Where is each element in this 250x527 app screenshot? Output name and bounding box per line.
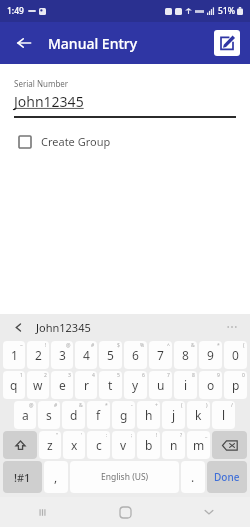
staticText: q (10, 377, 18, 393)
button[interactable]: Edit (214, 30, 240, 56)
button[interactable]: Create Group (14, 134, 111, 149)
staticText: b (145, 437, 153, 453)
button[interactable]: !#1 (3, 461, 42, 493)
button[interactable]: # (75, 341, 97, 369)
button[interactable]: 4 (75, 371, 97, 399)
staticText: Manual Entry (48, 34, 138, 53)
button[interactable]: More options (224, 319, 240, 335)
staticText: / (231, 402, 233, 409)
button[interactable]: $ (99, 341, 122, 369)
button[interactable]: + (137, 401, 160, 429)
staticText: d (70, 407, 78, 423)
staticText: z (47, 437, 53, 453)
button[interactable]: ) (187, 401, 210, 429)
staticText: o (207, 377, 215, 393)
staticText: Create Group (41, 134, 111, 149)
button[interactable]: 8 (174, 371, 197, 399)
button[interactable]: # (38, 401, 60, 429)
staticText: ? (180, 432, 183, 439)
staticText: 5 (117, 372, 120, 379)
staticText: ) (206, 402, 208, 409)
button[interactable]: : (87, 431, 110, 459)
staticText: ~ (20, 342, 23, 349)
button[interactable]: ^ (149, 341, 172, 369)
button[interactable]: " (39, 431, 61, 459)
button[interactable]: * (199, 341, 222, 369)
staticText: ' (81, 432, 83, 439)
staticText: 3 (59, 347, 66, 363)
staticText: ; (131, 432, 133, 439)
staticText: !#1 (14, 470, 31, 485)
button[interactable]: 6 (124, 371, 147, 399)
staticText: _ (205, 432, 208, 439)
button[interactable]: _ (187, 431, 210, 459)
button[interactable]: John12345 (36, 320, 91, 335)
button[interactable]: ( (224, 341, 247, 369)
button[interactable]: 0 (224, 371, 247, 399)
button[interactable]: ? (162, 431, 185, 459)
button[interactable]: Previous suggestions (10, 319, 26, 335)
button[interactable]: Hide keyboard (167, 497, 250, 527)
button[interactable]: 3 (51, 371, 73, 399)
button[interactable]: % (124, 341, 147, 369)
button[interactable]: - (112, 401, 135, 429)
staticText: 9 (217, 372, 220, 379)
button[interactable]: @ (51, 341, 73, 369)
staticText: 1 (11, 347, 18, 363)
button[interactable]: . (181, 461, 205, 493)
staticText: 6 (142, 372, 145, 379)
button[interactable]: ' (63, 431, 85, 459)
button[interactable]: / (212, 401, 235, 429)
staticText: ! (45, 342, 47, 349)
button[interactable]: Back (10, 29, 38, 57)
staticText: i (184, 377, 188, 393)
staticText: t (108, 377, 113, 393)
button[interactable]: , (44, 461, 68, 493)
staticText: . (191, 469, 195, 485)
staticText: @ (66, 342, 71, 349)
staticText: # (54, 402, 58, 409)
button[interactable]: Recents (0, 497, 84, 527)
button[interactable]: 5 (99, 371, 122, 399)
button[interactable]: English (US) (70, 461, 179, 493)
staticText: j (172, 407, 176, 423)
button[interactable]: @ (14, 401, 36, 429)
button[interactable]: ! (137, 431, 160, 459)
button[interactable]: 1 (3, 371, 25, 399)
staticText: Serial Number (14, 78, 69, 89)
staticText: k (195, 407, 202, 423)
button[interactable]: 2 (27, 371, 49, 399)
staticText: v (120, 437, 127, 453)
button[interactable]: & (62, 401, 85, 429)
staticText: 51% (218, 5, 235, 17)
button[interactable]: Backspace (212, 431, 247, 459)
button[interactable]: 7 (149, 371, 172, 399)
staticText: y (132, 377, 139, 393)
button[interactable]: 9 (199, 371, 222, 399)
staticText: c (96, 437, 102, 453)
button[interactable]: Home (84, 497, 167, 527)
staticText: English (US) (101, 471, 149, 483)
staticText: # (91, 342, 95, 349)
staticText: 2 (35, 347, 42, 363)
button[interactable]: Done (207, 461, 247, 493)
staticText: 4 (83, 347, 90, 363)
button[interactable]: Shift (3, 431, 37, 459)
staticText: 4 (92, 372, 95, 379)
staticText: + (155, 402, 158, 409)
staticText: g (120, 407, 128, 423)
button[interactable]: ; (112, 431, 135, 459)
staticText: % (140, 342, 145, 349)
staticText: ( (243, 342, 245, 349)
button[interactable]: ! (27, 341, 49, 369)
staticText: John12345 (14, 92, 84, 111)
button[interactable]: * (87, 401, 110, 429)
button[interactable]: ( (162, 401, 185, 429)
staticText: Done (214, 470, 240, 484)
staticText: 7 (157, 347, 164, 363)
button[interactable]: & (174, 341, 197, 369)
staticText: s (46, 407, 52, 423)
button[interactable]: ~ (3, 341, 25, 369)
staticText: @ (29, 402, 34, 409)
staticText: & (191, 342, 195, 349)
